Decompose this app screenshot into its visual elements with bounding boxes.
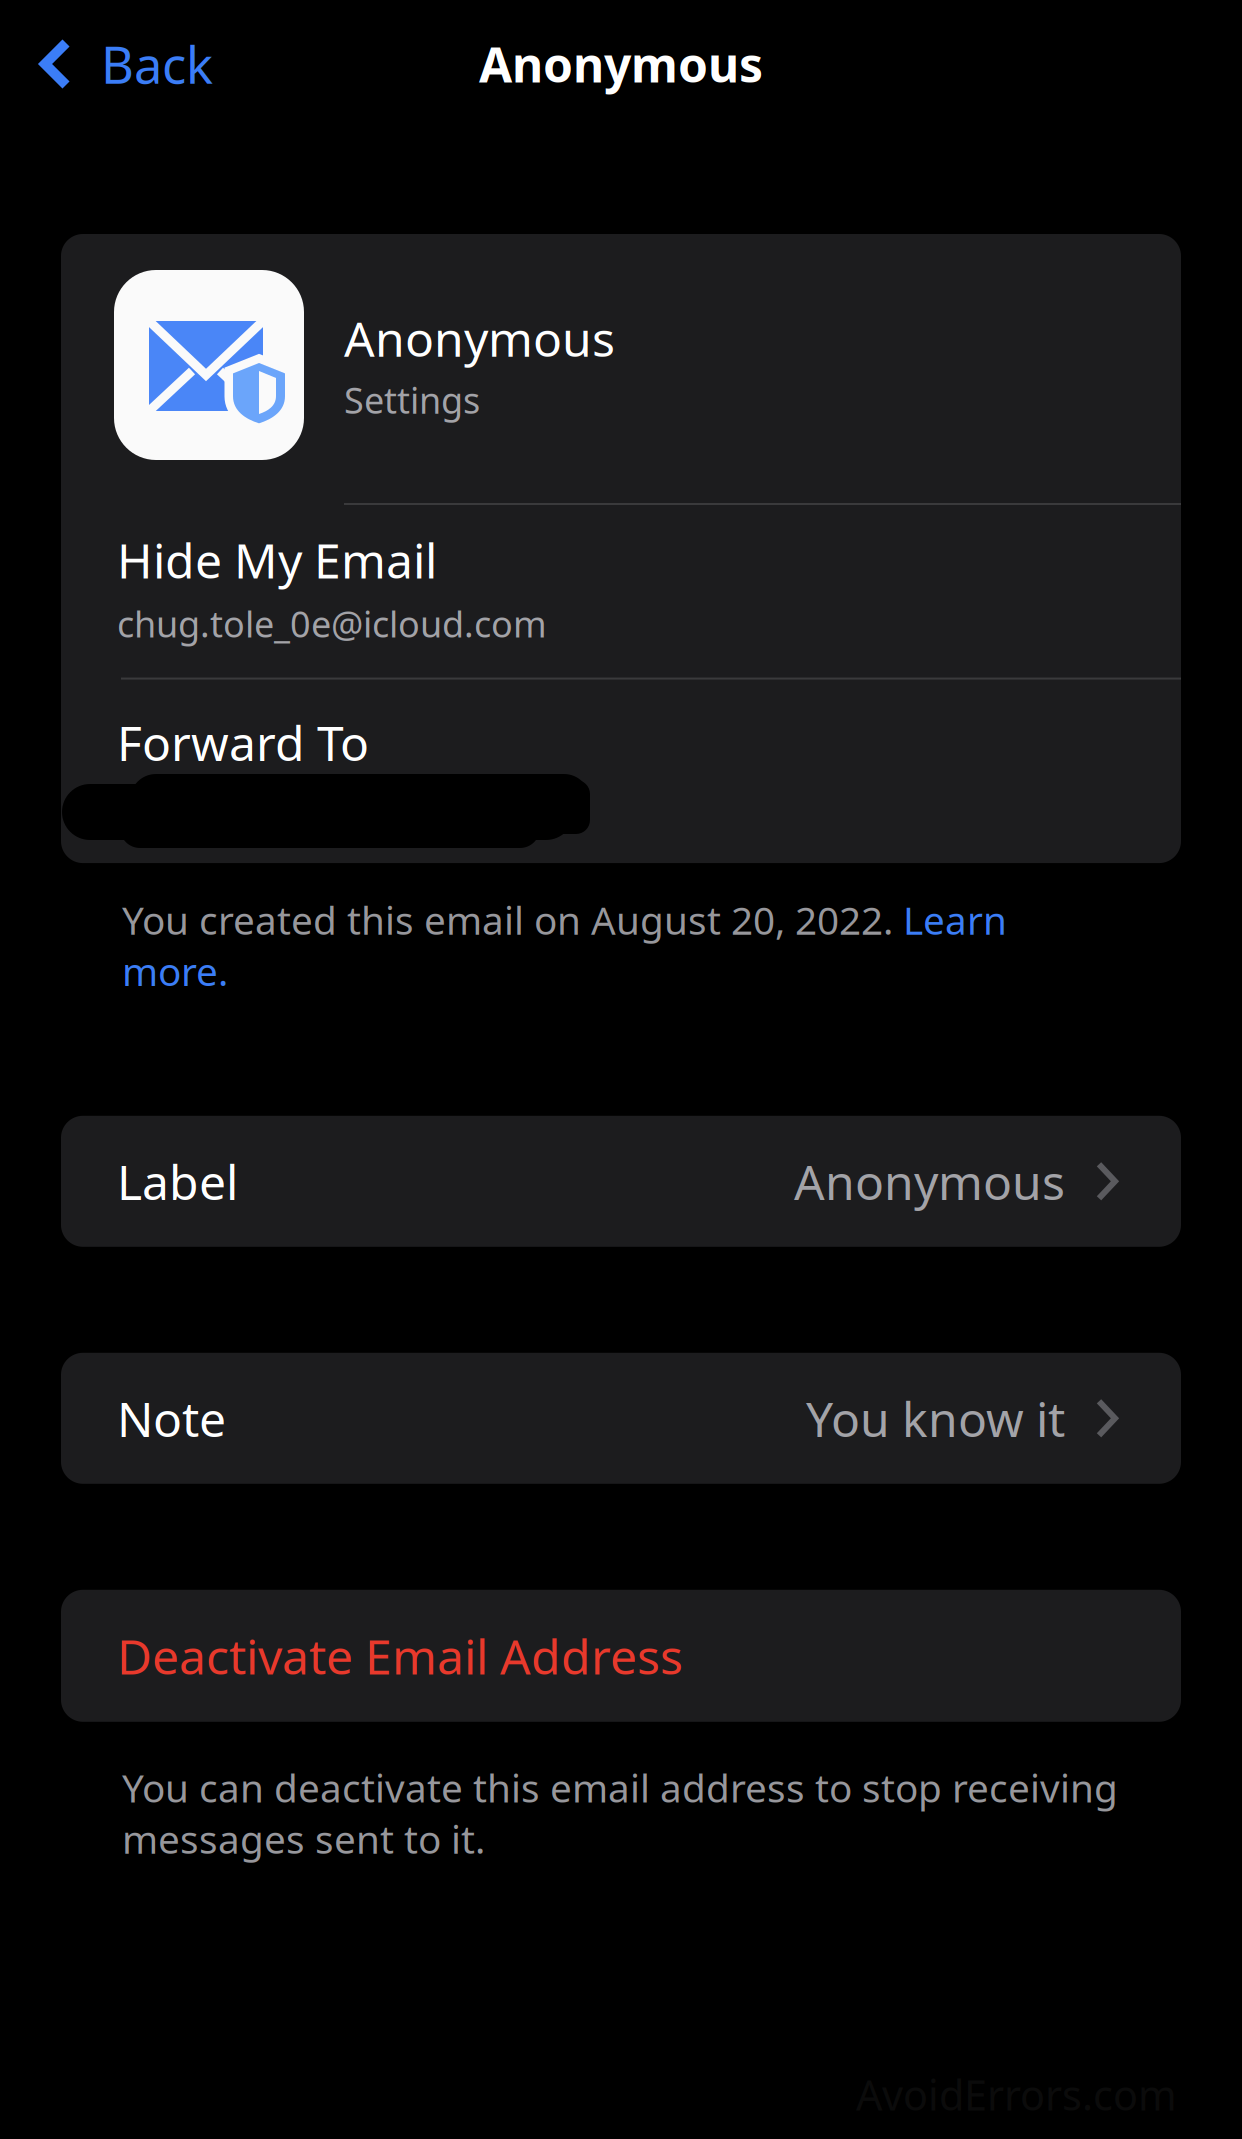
staticText: Back <box>101 30 213 98</box>
staticText: Label <box>117 1149 238 1213</box>
staticText: Deactivate Email Address <box>117 1624 683 1688</box>
staticText: AvoidErrors.com <box>856 2067 1177 2122</box>
staticText: Forward To <box>117 710 369 774</box>
button[interactable]: You created this email on August 20, 202… <box>122 894 1022 997</box>
staticText: You can deactivate this email address to… <box>122 1762 1118 1864</box>
staticText: Settings <box>344 376 480 424</box>
staticText: Hide My Email <box>117 528 437 592</box>
staticText: Anonymous <box>479 32 763 96</box>
button[interactable]: Forward To <box>61 679 1181 863</box>
button[interactable]: Hide My Email <box>61 505 1181 677</box>
staticText: You created this email on August 20, 202… <box>122 894 1007 997</box>
button[interactable]: Note <box>61 1353 1181 1484</box>
staticText: chug.tole_0e@icloud.com <box>117 600 547 647</box>
button[interactable]: Label <box>61 1116 1181 1247</box>
staticText: Note <box>117 1386 226 1450</box>
button[interactable]: Back <box>0 8 241 120</box>
staticText: Anonymous <box>344 306 615 370</box>
staticText: You know it <box>806 1386 1065 1450</box>
staticText: Anonymous <box>794 1149 1065 1213</box>
button[interactable]: Deactivate Email Address <box>61 1590 1181 1722</box>
